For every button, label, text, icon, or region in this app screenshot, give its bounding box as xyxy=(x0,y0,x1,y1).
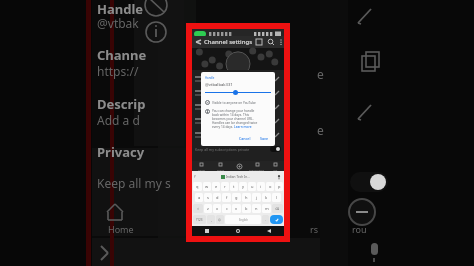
button[interactable]: c xyxy=(222,204,231,213)
button[interactable]: Indian Tech In... xyxy=(221,175,250,179)
button[interactable]: Shorts xyxy=(211,161,230,171)
button[interactable]: a xyxy=(195,193,203,202)
button[interactable] xyxy=(195,114,281,128)
staticText: Home xyxy=(198,168,205,171)
button[interactable]: ⌫ xyxy=(272,204,283,213)
button[interactable]: Keep all my subscriptions private xyxy=(195,144,281,154)
button[interactable]: f xyxy=(222,193,231,202)
staticText: You xyxy=(273,168,278,171)
staticText: Add a d xyxy=(97,112,140,128)
staticText: @vtbalbak331 xyxy=(205,82,233,88)
button[interactable]: ⇧ xyxy=(193,204,203,213)
staticText: e xyxy=(317,122,324,138)
button[interactable]: l xyxy=(272,193,281,202)
staticText: rs xyxy=(310,223,319,235)
staticText: ⌫ xyxy=(275,207,280,210)
staticText: q xyxy=(196,184,199,189)
staticText: Cancel xyxy=(239,136,251,141)
staticText: @vtbak xyxy=(97,15,139,31)
button[interactable]: y xyxy=(239,182,247,191)
button[interactable]: Search xyxy=(265,36,277,48)
staticText: Shorts xyxy=(217,168,225,171)
staticText: t xyxy=(233,184,235,189)
staticText: Indian Tech In... xyxy=(226,175,250,179)
button[interactable]: You xyxy=(266,161,284,171)
staticText: Handle xyxy=(97,0,144,18)
button[interactable]: x xyxy=(213,204,221,213)
button[interactable]: English xyxy=(225,215,261,224)
button[interactable]: Cast xyxy=(253,36,265,48)
button[interactable]: d xyxy=(213,193,221,202)
button[interactable]: Create xyxy=(230,161,248,171)
staticText: Privacy xyxy=(97,143,145,161)
button[interactable]: Back xyxy=(253,226,284,236)
button[interactable]: Enter xyxy=(270,215,283,224)
button[interactable] xyxy=(195,72,281,86)
staticText: c xyxy=(226,206,228,211)
staticText: every 14 days. xyxy=(212,125,234,129)
staticText: r xyxy=(224,184,226,189)
button[interactable]: m xyxy=(262,204,271,213)
button[interactable]: o xyxy=(266,182,274,191)
button[interactable]: , xyxy=(207,215,215,224)
button[interactable]: Voice input xyxy=(276,174,282,180)
button[interactable]: b xyxy=(242,204,251,213)
staticText: w xyxy=(205,184,209,189)
staticText: k xyxy=(265,195,268,200)
staticText: Y xyxy=(194,175,196,179)
button[interactable]: s xyxy=(204,193,212,202)
button[interactable]: n xyxy=(252,204,261,213)
staticText: ☺ xyxy=(218,218,222,221)
button[interactable]: ?123 xyxy=(193,215,206,224)
button[interactable] xyxy=(195,86,281,100)
button[interactable]: Subscriptions xyxy=(248,161,266,171)
button[interactable]: q xyxy=(193,182,202,191)
button[interactable]: u xyxy=(248,182,256,191)
staticText: n xyxy=(255,206,258,211)
button[interactable]: Back xyxy=(192,36,204,48)
staticText: You can change your handle xyxy=(212,109,255,113)
staticText: back within 14 days. This xyxy=(212,113,250,117)
button[interactable]: g xyxy=(232,193,241,202)
button[interactable]: r xyxy=(221,182,229,191)
button[interactable]: i xyxy=(257,182,265,191)
staticText: l xyxy=(276,195,278,200)
staticText: Descrip xyxy=(97,95,146,113)
staticText: Channel settings xyxy=(204,38,253,46)
staticText: h xyxy=(245,195,248,200)
staticText: y xyxy=(242,184,245,189)
button[interactable]: Learn more xyxy=(234,125,252,129)
staticText: g xyxy=(235,195,238,200)
staticText: v xyxy=(235,206,238,211)
button[interactable]: j xyxy=(252,193,261,202)
button[interactable]: z xyxy=(204,204,212,213)
button[interactable]: w xyxy=(203,182,211,191)
button[interactable]: Save xyxy=(257,135,271,142)
staticText: https:// xyxy=(97,63,139,79)
button[interactable]: t xyxy=(230,182,238,191)
button[interactable]: k xyxy=(262,193,271,202)
staticText: s xyxy=(207,195,209,200)
button[interactable]: More options xyxy=(277,37,284,47)
staticText: ⇧ xyxy=(197,207,200,210)
staticText: p xyxy=(278,184,281,189)
staticText: English xyxy=(239,218,248,222)
button[interactable]: p xyxy=(275,182,283,191)
button[interactable]: Home xyxy=(222,226,253,236)
button[interactable]: Home xyxy=(192,161,211,171)
staticText: becomes your channel URL. xyxy=(212,117,254,121)
button[interactable]: h xyxy=(242,193,251,202)
staticText: b xyxy=(245,206,248,211)
button[interactable] xyxy=(195,128,281,142)
button[interactable] xyxy=(195,100,281,114)
staticText: u xyxy=(251,184,254,189)
button[interactable]: Cancel xyxy=(236,135,254,142)
button[interactable]: Recents xyxy=(192,226,222,236)
staticText: z xyxy=(207,206,209,211)
button[interactable]: ☺ xyxy=(216,215,224,224)
staticText: e xyxy=(317,66,324,82)
staticText: ?123 xyxy=(196,218,203,222)
button[interactable]: e xyxy=(212,182,220,191)
button[interactable]: v xyxy=(232,204,241,213)
